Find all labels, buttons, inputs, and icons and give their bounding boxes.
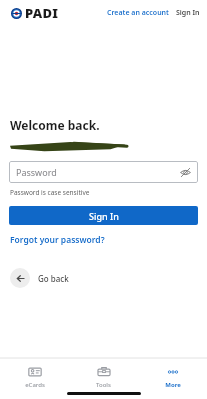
staticText: Sign In xyxy=(176,8,200,18)
button[interactable]: eCards xyxy=(0,362,69,391)
button[interactable]: Go back xyxy=(10,268,69,288)
button[interactable]: Sign In xyxy=(176,8,200,18)
staticText: Create an account xyxy=(107,8,169,18)
staticText: eCards xyxy=(25,381,45,389)
staticText: Forgot your password? xyxy=(10,234,105,246)
staticText: Password is case sensitive xyxy=(10,188,90,197)
button[interactable]: More xyxy=(138,362,207,391)
button[interactable]: Password xyxy=(9,161,198,183)
button[interactable]: Create an account xyxy=(107,8,169,18)
button[interactable]: Tools xyxy=(69,362,138,391)
staticText: Sign In xyxy=(89,210,119,222)
button[interactable]: Show password xyxy=(179,166,192,179)
button[interactable]: Sign In xyxy=(9,206,198,225)
staticText: More xyxy=(165,381,181,389)
staticText: Go back xyxy=(38,273,69,284)
staticText: Welcome back. xyxy=(10,117,100,133)
staticText: PADI xyxy=(25,4,59,22)
staticText: Password xyxy=(16,166,57,178)
staticText: Tools xyxy=(96,381,111,389)
button[interactable]: Forgot your password? xyxy=(10,234,105,246)
